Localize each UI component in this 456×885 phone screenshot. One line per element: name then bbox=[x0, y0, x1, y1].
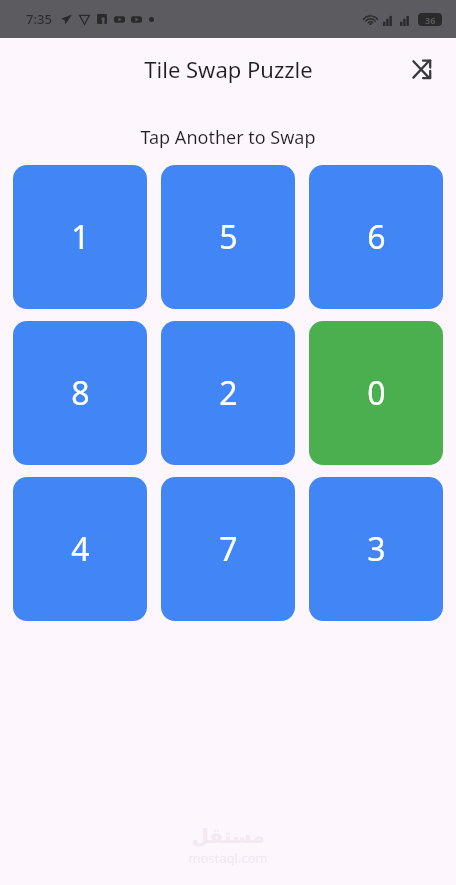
button[interactable]: 3 bbox=[309, 477, 443, 621]
staticText: mostaql.com bbox=[188, 849, 268, 867]
staticText: مستقل bbox=[191, 824, 265, 847]
button[interactable]: 0 bbox=[309, 321, 443, 465]
button[interactable]: 7 bbox=[161, 477, 295, 621]
staticText: Tap Another to Swap bbox=[0, 125, 456, 150]
staticText: 8 bbox=[71, 371, 90, 415]
staticText: 3 bbox=[367, 527, 386, 571]
staticText: 7:35 bbox=[26, 10, 52, 28]
button[interactable]: 1 bbox=[13, 165, 147, 309]
button[interactable]: Shuffle bbox=[400, 46, 446, 92]
button[interactable]: 4 bbox=[13, 477, 147, 621]
button[interactable]: 8 bbox=[13, 321, 147, 465]
staticText: 7 bbox=[219, 527, 238, 571]
staticText: 4 bbox=[71, 527, 90, 571]
button[interactable]: 5 bbox=[161, 165, 295, 309]
staticText: 1 bbox=[71, 215, 90, 259]
button[interactable]: 2 bbox=[161, 321, 295, 465]
staticText: 5 bbox=[219, 215, 238, 259]
staticText: Tile Swap Puzzle bbox=[144, 54, 313, 84]
staticText: 6 bbox=[367, 215, 386, 259]
staticText: 0 bbox=[367, 371, 386, 415]
staticText: 2 bbox=[219, 371, 238, 415]
staticText: 36 bbox=[425, 14, 436, 26]
button[interactable]: 6 bbox=[309, 165, 443, 309]
